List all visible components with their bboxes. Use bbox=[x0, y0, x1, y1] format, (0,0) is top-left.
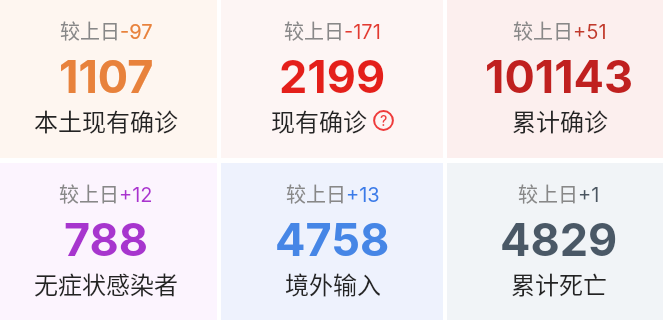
staticText: 较上日+51 bbox=[513, 16, 607, 45]
button[interactable]: 较上日+12 bbox=[0, 163, 217, 320]
staticText: 较上日+13 bbox=[286, 179, 380, 208]
staticText: 2199 bbox=[279, 49, 386, 103]
button[interactable]: 较上日+51 bbox=[447, 0, 663, 158]
button[interactable]: 说明 bbox=[373, 110, 394, 131]
staticText: 101143 bbox=[485, 49, 634, 103]
staticText: 4758 bbox=[275, 212, 390, 266]
staticText: 较上日+1 bbox=[518, 179, 600, 208]
staticText: 现有确诊 bbox=[271, 103, 367, 138]
button[interactable]: 较上日-171 bbox=[221, 0, 443, 158]
staticText: 累计死亡 bbox=[511, 266, 607, 301]
staticText: 无症状感染者 bbox=[34, 266, 178, 301]
staticText: ? bbox=[380, 112, 388, 129]
button[interactable]: 较上日-97 bbox=[0, 0, 217, 158]
staticText: 788 bbox=[64, 212, 149, 266]
button[interactable]: 较上日+13 bbox=[221, 163, 443, 320]
staticText: 境外输入 bbox=[285, 266, 381, 301]
staticText: 较上日-97 bbox=[60, 16, 153, 45]
staticText: 累计确诊 bbox=[512, 103, 608, 138]
staticText: 1107 bbox=[59, 49, 154, 103]
staticText: 本土现有确诊 bbox=[34, 103, 178, 138]
button[interactable]: 较上日+1 bbox=[447, 163, 663, 320]
staticText: 4829 bbox=[500, 212, 618, 266]
staticText: 较上日-171 bbox=[284, 16, 381, 45]
staticText: 较上日+12 bbox=[59, 179, 153, 208]
